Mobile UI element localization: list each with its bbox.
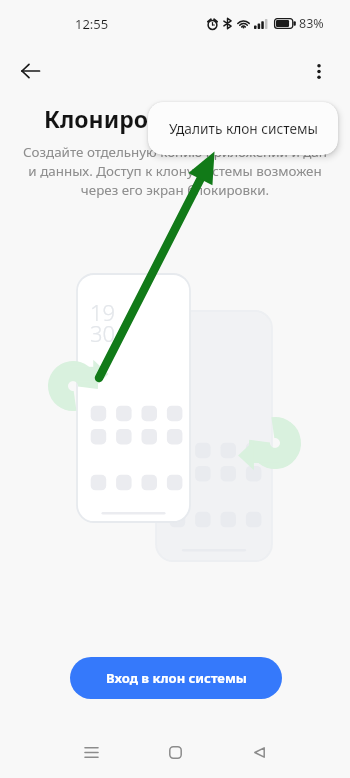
button[interactable]: Recents	[67, 728, 115, 776]
button[interactable]: Back	[235, 728, 283, 776]
staticText: Вход в клон системы	[106, 669, 247, 687]
staticText: Создайте отдельную копию приложений и да…	[0, 143, 350, 199]
button[interactable]: More options	[297, 49, 341, 93]
staticText: 12:55	[75, 15, 109, 33]
button[interactable]: Home	[151, 728, 199, 776]
staticText: 19 30	[90, 297, 116, 348]
staticText: 83%	[299, 15, 324, 32]
staticText: Удалить клон системы	[169, 119, 318, 138]
button[interactable]: Вход в клон системы	[70, 657, 282, 699]
button[interactable]: Back	[8, 49, 52, 93]
staticText: Клонирование	[44, 103, 220, 134]
button[interactable]: Удалить клон системы	[148, 102, 338, 155]
